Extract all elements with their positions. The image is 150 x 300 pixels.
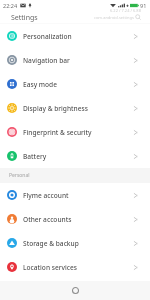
staticText: 22:24 <box>3 2 18 9</box>
staticText: 6.22 / 7.24 / 6.88 <box>110 8 141 13</box>
staticText: Easy mode <box>23 80 57 89</box>
staticText: Settings <box>11 13 38 23</box>
staticText: 91 <box>140 2 147 9</box>
button[interactable]: Storage & backup <box>0 231 150 255</box>
button[interactable]: Fingerprint & security <box>0 120 150 144</box>
button[interactable]: Other accounts <box>0 207 150 231</box>
staticText: Other accounts <box>23 215 72 224</box>
button[interactable]: Navigation bar <box>0 48 150 72</box>
button[interactable]: Personalization <box>0 24 150 48</box>
staticText: Personal <box>9 172 30 179</box>
button[interactable]: Display & brightness <box>0 96 150 120</box>
staticText: com.android.settings <box>94 15 134 20</box>
button[interactable]: Easy mode <box>0 72 150 96</box>
staticText: Battery <box>23 152 47 161</box>
staticText: Storage & backup <box>23 239 79 248</box>
staticText: Fingerprint & security <box>23 128 92 137</box>
button[interactable]: Flyme account <box>0 183 150 207</box>
button[interactable]: Home <box>71 286 80 295</box>
button[interactable]: Location services <box>0 255 150 279</box>
staticText: Personalization <box>23 32 72 41</box>
staticText: Display & brightness <box>23 104 88 113</box>
staticText: Location services <box>23 263 78 272</box>
staticText: Navigation bar <box>23 56 70 65</box>
button[interactable]: Battery <box>0 144 150 168</box>
staticText: Flyme account <box>23 191 69 200</box>
